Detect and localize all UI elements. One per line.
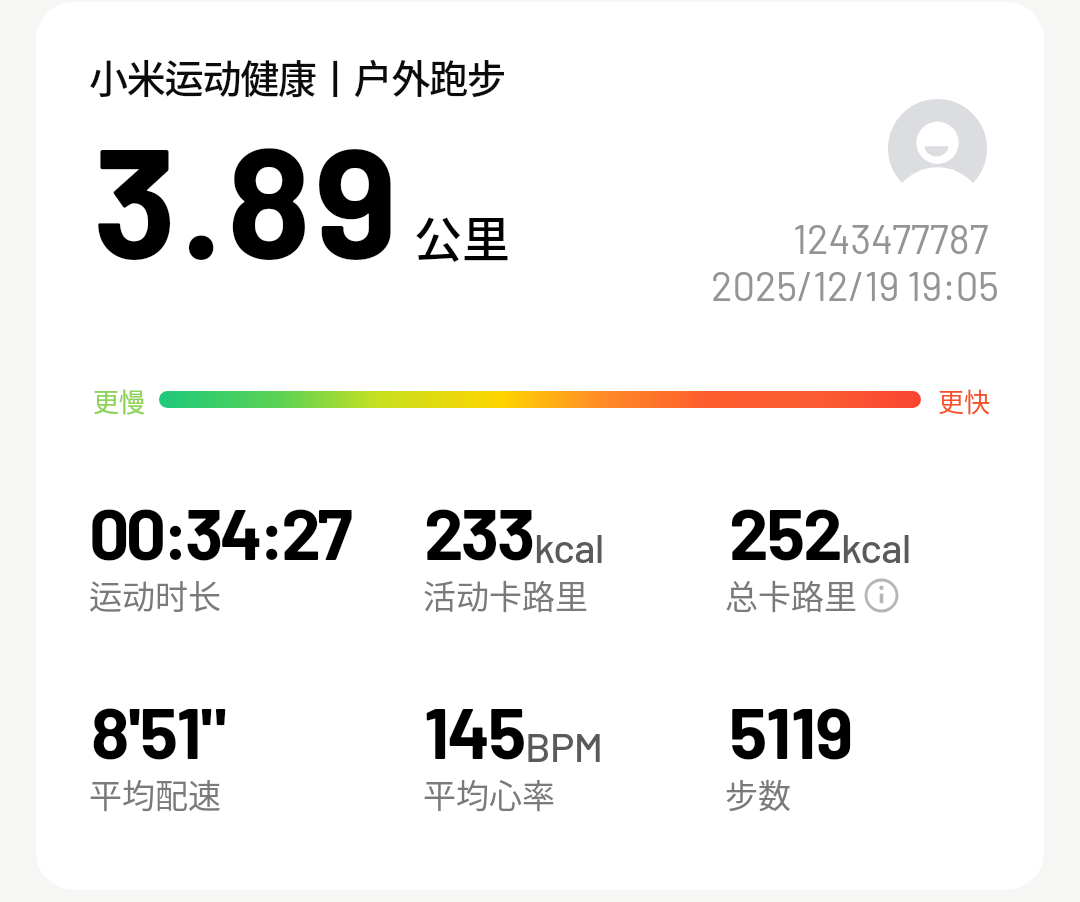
button[interactable]: Profile <box>888 99 987 198</box>
staticText: 总卡路里 <box>725 571 857 619</box>
staticText: 252 <box>729 489 841 574</box>
staticText: 运动时长 <box>89 571 221 619</box>
staticText: 步数 <box>725 770 791 818</box>
staticText: 3.89 <box>93 104 402 290</box>
staticText: 2025/12/19 19:05 <box>711 261 999 309</box>
staticText: 更快 <box>938 382 991 420</box>
staticText: 小米运动健康丨户外跑步 <box>89 48 505 104</box>
staticText: 公里 <box>414 201 511 271</box>
staticText: 1243477787 <box>793 214 989 262</box>
staticText: kcal <box>534 522 604 571</box>
button[interactable]: Info <box>864 578 899 613</box>
staticText: 平均心率 <box>423 770 555 818</box>
staticText: 更慢 <box>93 382 146 420</box>
staticText: 5119 <box>729 688 853 773</box>
staticText: 233 <box>424 489 534 574</box>
staticText: 平均配速 <box>89 770 221 818</box>
staticText: 活动卡路里 <box>423 571 588 619</box>
staticText: BPM <box>525 721 603 770</box>
staticText: kcal <box>841 522 911 571</box>
staticText: 145 <box>424 688 525 773</box>
staticText: 00:34:27 <box>89 489 350 574</box>
staticText: 8'51" <box>91 688 226 773</box>
